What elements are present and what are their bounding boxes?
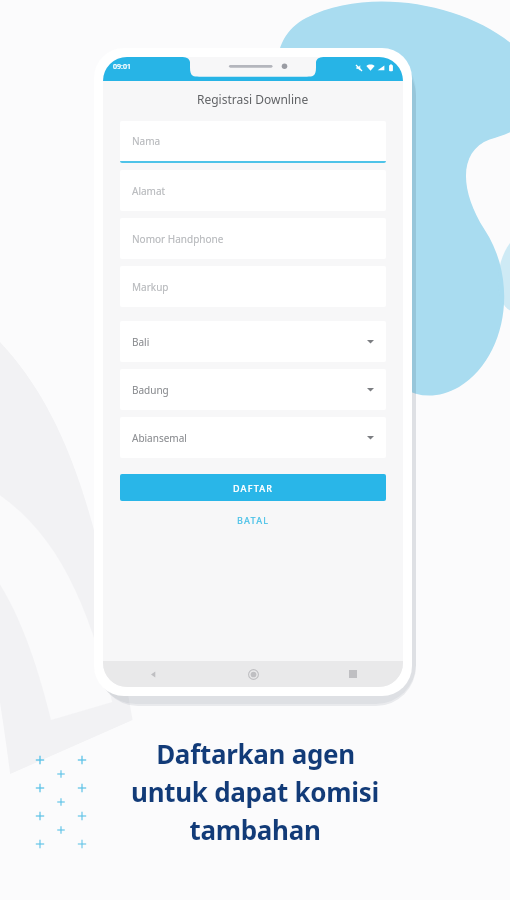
button[interactable]: Back <box>103 661 203 687</box>
button[interactable]: Recent apps <box>303 661 403 687</box>
staticText: Nama <box>132 134 161 148</box>
button[interactable]: DAFTAR <box>120 474 386 501</box>
staticText: Badung <box>132 383 169 397</box>
button[interactable]: Markup <box>120 266 386 307</box>
staticText: BATAL <box>237 514 270 526</box>
button[interactable]: Nama <box>120 121 386 163</box>
button[interactable]: BATAL <box>120 510 386 530</box>
staticText: Bali <box>132 335 150 349</box>
button[interactable]: Badung <box>120 369 386 410</box>
button[interactable]: Alamat <box>120 170 386 211</box>
button[interactable]: Abiansemal <box>120 417 386 458</box>
staticText: Abiansemal <box>132 431 187 445</box>
button[interactable]: Nomor Handphone <box>120 218 386 259</box>
staticText: Alamat <box>132 184 166 198</box>
button[interactable]: Bali <box>120 321 386 362</box>
staticText: untuk dapat komisi <box>131 774 379 809</box>
staticText: DAFTAR <box>233 482 274 494</box>
staticText: Daftarkan agen <box>156 736 355 771</box>
button[interactable]: Home <box>203 661 303 687</box>
staticText: Registrasi Downline <box>197 91 309 107</box>
staticText: Nomor Handphone <box>132 232 224 246</box>
staticText: tambahan <box>189 812 321 847</box>
staticText: 09:01 <box>113 62 131 72</box>
staticText: Markup <box>132 280 169 294</box>
